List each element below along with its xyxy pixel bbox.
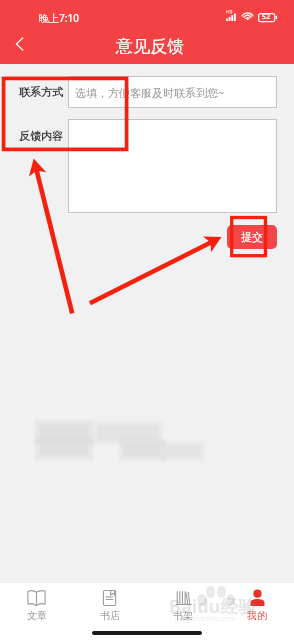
button[interactable] <box>68 119 277 213</box>
staticText: 52 <box>262 12 271 22</box>
button[interactable]: Back <box>2 26 38 62</box>
staticText: 提交 <box>241 230 263 244</box>
button[interactable]: 文章 <box>0 583 73 622</box>
staticText: 意见反馈 <box>116 36 184 57</box>
button[interactable]: 我的 <box>220 583 294 622</box>
staticText: jingyan.baidu.com <box>175 614 236 624</box>
staticText: 联系方式 <box>19 85 63 99</box>
staticText: 晚上7:10 <box>39 11 79 25</box>
staticText: 反馈内容 <box>19 129 63 143</box>
button[interactable]: 书架 <box>146 583 220 622</box>
button[interactable]: 书店 <box>73 583 146 622</box>
staticText: 选填，方便客服及时联系到您~ <box>75 85 225 100</box>
button[interactable]: 选填，方便客服及时联系到您~ <box>68 76 277 108</box>
staticText: 文章 <box>27 609 47 622</box>
staticText: 书架 <box>173 609 193 622</box>
staticText: 我的 <box>247 609 267 622</box>
staticText: 书店 <box>100 609 120 622</box>
staticText: Baidu经验 <box>169 594 257 619</box>
button[interactable]: 提交 <box>227 225 277 249</box>
